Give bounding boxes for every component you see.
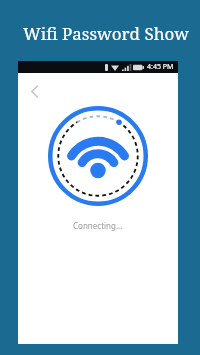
- staticText: Wifi Password Show: [23, 22, 189, 45]
- button[interactable]: Back: [21, 78, 47, 104]
- staticText: 4:45 PM: [147, 62, 174, 72]
- staticText: Connecting...: [73, 220, 123, 231]
